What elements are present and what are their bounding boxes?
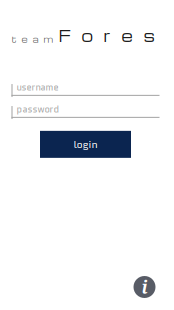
staticText: i [141, 275, 147, 299]
button[interactable]: username [11, 82, 159, 96]
staticText: t [11, 33, 16, 45]
staticText: a [32, 33, 38, 45]
staticText: o [81, 25, 92, 46]
button[interactable]: password [11, 104, 159, 118]
staticText: r [103, 25, 110, 46]
staticText: F [58, 25, 70, 46]
staticText: m [43, 33, 53, 45]
button[interactable]: login [40, 131, 131, 158]
staticText: s [143, 25, 154, 46]
staticText: password [16, 103, 59, 116]
staticText: username [16, 81, 58, 94]
staticText: e [21, 33, 27, 45]
staticText: e [121, 25, 132, 46]
staticText: login [73, 137, 97, 152]
button[interactable]: Info [133, 276, 155, 298]
